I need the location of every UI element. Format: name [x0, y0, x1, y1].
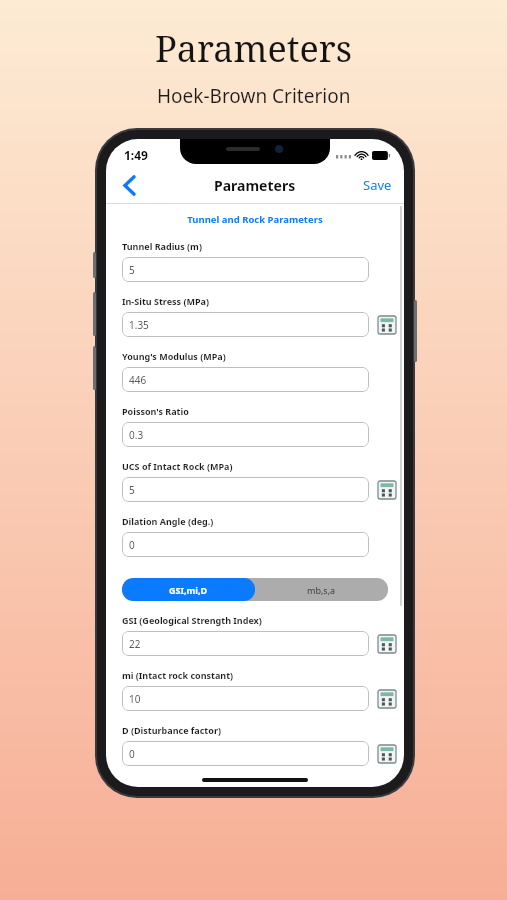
staticText: 5 [129, 263, 135, 277]
button[interactable]: mb,s,a [255, 578, 388, 601]
button[interactable]: Back [112, 168, 146, 202]
button[interactable]: 1.35 [122, 312, 369, 337]
staticText: 1.35 [129, 318, 149, 332]
button[interactable]: 0 [122, 532, 369, 557]
staticText: mi (Intact rock constant) [122, 669, 234, 681]
button[interactable]: 446 [122, 367, 369, 392]
button[interactable]: Calculator [377, 689, 396, 708]
staticText: 446 [129, 373, 147, 387]
staticText: 22 [129, 637, 141, 651]
button[interactable]: 5 [122, 477, 369, 502]
staticText: D (Disturbance factor) [122, 724, 221, 736]
staticText: 0 [129, 538, 135, 552]
staticText: GSI,mi,D [169, 584, 208, 596]
staticText: 0 [129, 747, 135, 761]
staticText: 5 [129, 483, 135, 497]
staticText: Tunnel and Rock Parameters [106, 213, 404, 226]
staticText: GSI (Geological Strength Index) [122, 614, 262, 626]
staticText: In-Situ Stress (MPa) [122, 295, 210, 307]
staticText: Dilation Angle (deg.) [122, 515, 214, 527]
staticText: Save [363, 176, 392, 194]
staticText: Parameters [214, 176, 296, 195]
staticText: 0.3 [129, 428, 144, 442]
button[interactable]: 22 [122, 631, 369, 656]
staticText: Tunnel Radius (m) [122, 240, 202, 252]
button[interactable]: 5 [122, 257, 369, 282]
staticText: Young's Modulus (MPa) [122, 350, 226, 362]
staticText: 10 [129, 692, 141, 706]
button[interactable]: Save [359, 170, 396, 200]
staticText: mb,s,a [307, 584, 336, 596]
staticText: Hoek-Brown Criterion [157, 83, 351, 109]
button[interactable]: Calculator [377, 744, 396, 763]
button[interactable]: 0 [122, 741, 369, 766]
button[interactable]: Calculator [377, 315, 396, 334]
staticText: Parameters [155, 24, 352, 73]
staticText: Poisson's Ratio [122, 405, 189, 417]
button[interactable]: Calculator [377, 634, 396, 653]
button[interactable]: 0.3 [122, 422, 369, 447]
staticText: 1:49 [124, 147, 148, 163]
button[interactable]: GSI,mi,D [122, 578, 255, 601]
button[interactable]: 10 [122, 686, 369, 711]
staticText: UCS of Intact Rock (MPa) [122, 460, 233, 472]
button[interactable]: Calculator [377, 480, 396, 499]
